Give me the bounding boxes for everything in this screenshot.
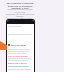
staticText: minima veniam quis nostrud: [8, 68, 31, 70]
staticText: Zobacz jak to dziala: [8, 62, 27, 65]
staticText: Ile to kosztuje: [11, 44, 26, 47]
staticText: Lorem ipsum dolor sit amet consectetur a…: [5, 8, 35, 19]
staticText: incididunt ut labore et dolore magna ali…: [8, 57, 32, 61]
staticText: Jak oszczedzac na emeryture: [8, 33, 33, 35]
staticText: Lorem ipsum dolor sit amet consectetur a…: [8, 48, 32, 54]
staticText: Finanse osobiste: [8, 25, 23, 27]
staticText: Plan oszczednosciowy: [8, 55, 28, 58]
staticText: Ten pieniadz o planowe wszystko co potrz…: [5, 2, 35, 9]
staticText: wiecej informacji o planie: [8, 65, 29, 67]
